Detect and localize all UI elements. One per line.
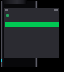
button[interactable]: App icon: [6, 14, 9, 17]
